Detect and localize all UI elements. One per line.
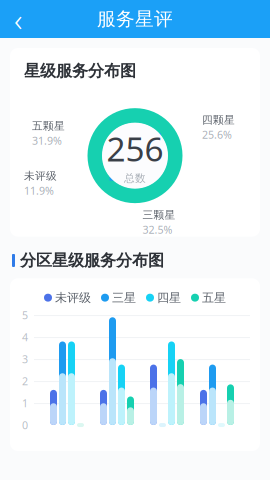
staticText: 1 bbox=[22, 396, 28, 410]
staticText: 三颗星 bbox=[142, 208, 175, 221]
button[interactable]: 返回 bbox=[0, 1, 36, 37]
staticText: 总数 bbox=[124, 172, 146, 185]
staticText: 5 bbox=[22, 308, 28, 322]
staticText: 256 bbox=[106, 126, 163, 171]
staticText: 五颗星 bbox=[32, 119, 65, 133]
staticText: 四颗星 bbox=[202, 113, 235, 127]
staticText: 五星 bbox=[202, 290, 226, 305]
staticText: 32.5% bbox=[142, 222, 172, 237]
staticText: 4 bbox=[22, 330, 28, 344]
staticText: 星级服务分布图 bbox=[24, 61, 136, 81]
staticText: 四星 bbox=[157, 290, 181, 305]
staticText: 2 bbox=[22, 374, 28, 388]
staticText: 未评级 bbox=[24, 169, 57, 183]
staticText: 未评级 bbox=[55, 290, 91, 305]
staticText: 25.6% bbox=[202, 128, 232, 142]
staticText: 三星 bbox=[112, 290, 136, 305]
staticText: 分区星级服务分布图 bbox=[20, 251, 164, 270]
staticText: ‹ bbox=[14, 0, 22, 40]
staticText: 3 bbox=[22, 352, 28, 366]
staticText: 0 bbox=[22, 418, 28, 432]
staticText: 11.9% bbox=[24, 184, 54, 198]
staticText: 服务星评 bbox=[97, 7, 173, 30]
staticText: 31.9% bbox=[32, 134, 62, 148]
